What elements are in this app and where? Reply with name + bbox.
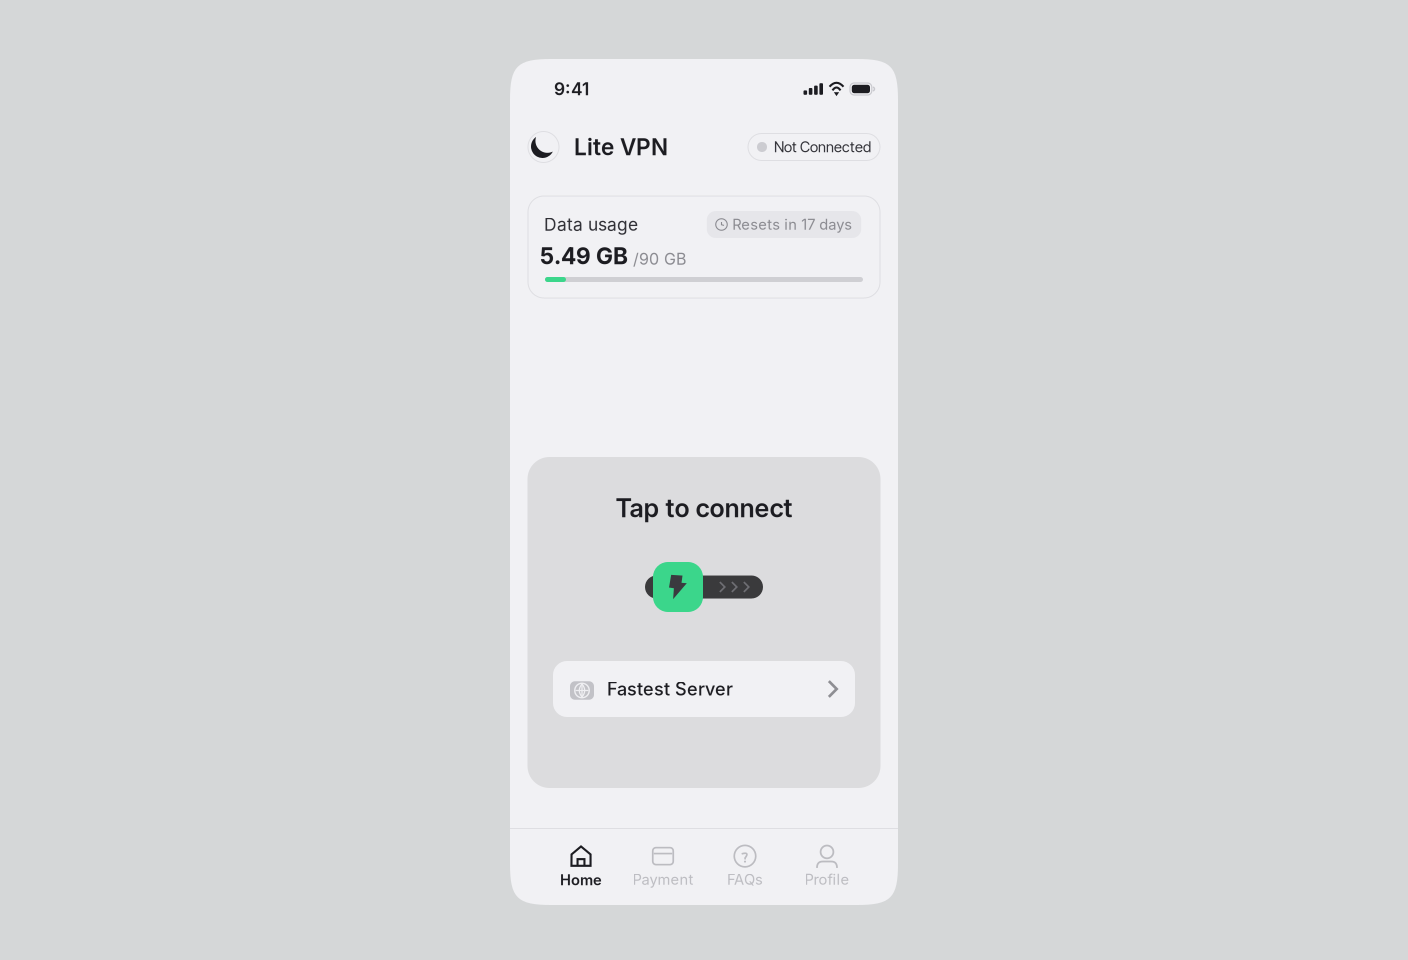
staticText: Payment (632, 871, 693, 888)
button[interactable]: Not Connected (748, 133, 880, 160)
staticText: Resets in 17 days (732, 216, 852, 233)
staticText: FAQs (727, 871, 763, 888)
staticText: Lite VPN (574, 133, 668, 161)
staticText: Home (560, 871, 602, 889)
staticText: Not Connected (774, 138, 871, 156)
button[interactable]: Home (540, 841, 622, 892)
staticText: Data usage (544, 214, 638, 235)
button[interactable]: Fastest Server (553, 661, 855, 717)
staticText: 9:41 (554, 78, 589, 99)
button[interactable]: Profile (786, 841, 868, 892)
staticText: Profile (804, 871, 849, 888)
button[interactable]: Dark mode (528, 131, 559, 162)
staticText: Fastest Server (607, 678, 733, 700)
button[interactable]: Payment (622, 841, 704, 892)
button[interactable]: Slide to connect (645, 562, 763, 612)
staticText: 5.49 GB (540, 242, 628, 270)
staticText: Tap to connect (615, 493, 792, 523)
staticText: /90 GB (633, 249, 686, 269)
button[interactable]: FAQs (704, 841, 786, 892)
